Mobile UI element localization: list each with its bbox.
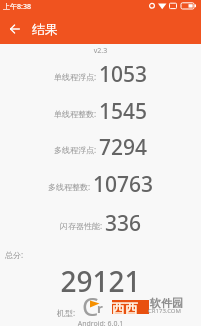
staticText: 机型: — [57, 307, 76, 318]
staticText: 单线程整数: — [54, 108, 97, 119]
staticText: 西西 — [112, 300, 138, 316]
staticText: 10763 — [93, 170, 154, 199]
staticText: Android: 6.0.1 — [0, 319, 201, 326]
staticText: r — [97, 299, 103, 317]
staticText: 单线程浮点: — [54, 71, 97, 82]
staticText: 结果 — [32, 21, 58, 37]
staticText: 软件园 — [150, 296, 183, 310]
staticText: v2.3 — [0, 46, 201, 56]
staticText: 29121 — [0, 262, 201, 300]
staticText: C — [82, 288, 99, 318]
staticText: 总分: — [5, 249, 24, 260]
staticText: 多线程整数: — [48, 181, 91, 192]
staticText: 336 — [105, 209, 142, 238]
staticText: 上午8:38 — [3, 2, 31, 12]
staticText: 7294 — [99, 133, 148, 162]
button[interactable]: Back — [5, 19, 25, 39]
staticText: 1545 — [99, 97, 148, 126]
staticText: 1053 — [99, 60, 148, 89]
staticText: 闪存器性能: — [60, 220, 103, 231]
staticText: 多线程浮点: — [54, 144, 97, 155]
staticText: CR173.COM — [148, 307, 181, 315]
